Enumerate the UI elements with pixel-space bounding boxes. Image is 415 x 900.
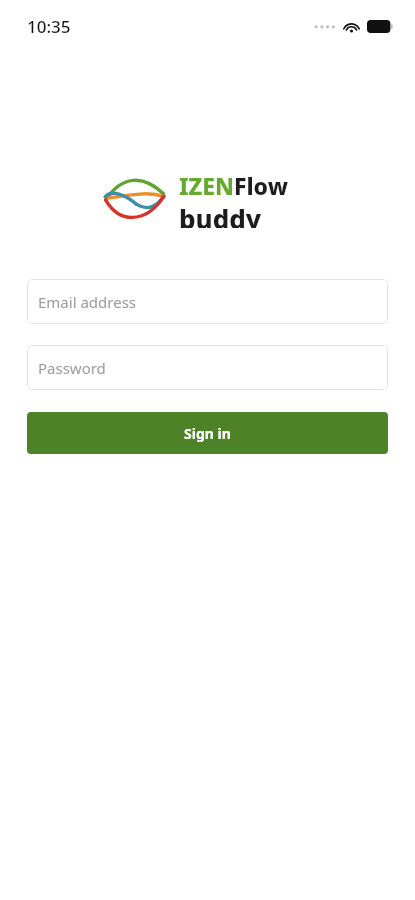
staticText: Password	[38, 358, 106, 378]
staticText: IZEN	[179, 170, 234, 201]
other: IZEN Flow buddy logo	[101, 173, 169, 225]
staticText: 10:35	[27, 15, 71, 38]
staticText: Flow	[234, 170, 288, 201]
button[interactable]: Sign in	[27, 412, 388, 454]
staticText: buddy	[179, 201, 262, 228]
button[interactable]: Password	[27, 345, 388, 390]
button[interactable]: Email address	[27, 279, 388, 324]
staticText: Email address	[38, 292, 137, 312]
staticText: Sign in	[184, 424, 231, 443]
